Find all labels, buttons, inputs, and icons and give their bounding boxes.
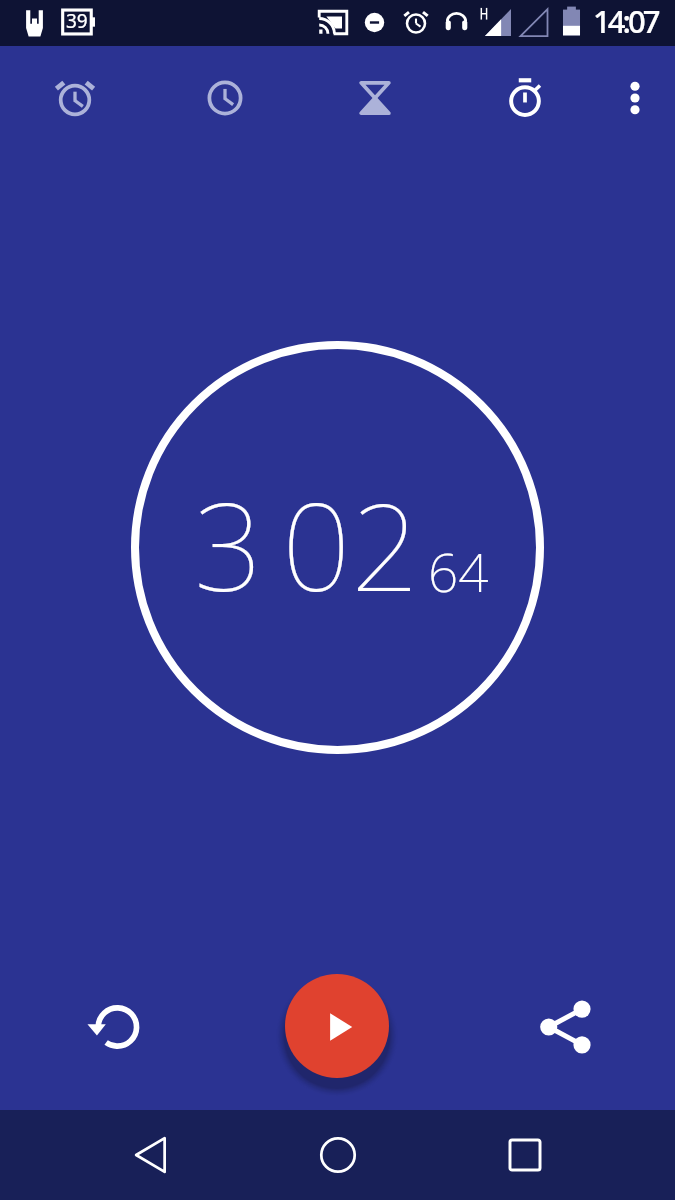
button[interactable]: Clock (150, 46, 300, 146)
button[interactable]: Back (114, 1110, 194, 1190)
staticText: 0 (282, 463, 351, 626)
staticText: 3 (194, 463, 263, 626)
staticText: 2 (351, 463, 420, 626)
button[interactable]: More options (600, 46, 675, 146)
staticText: 39 (66, 8, 88, 34)
staticText: 14:07 (593, 0, 658, 42)
button[interactable]: Reset (72, 987, 152, 1067)
button[interactable]: Stopwatch (450, 46, 600, 146)
button[interactable]: Start (285, 974, 389, 1078)
staticText: 64 (428, 535, 489, 607)
button[interactable]: Share (522, 987, 602, 1067)
button[interactable]: Home (298, 1110, 378, 1190)
button[interactable]: Timer (300, 46, 450, 146)
button[interactable]: Recents (485, 1110, 565, 1190)
button[interactable]: Alarm (0, 46, 150, 146)
